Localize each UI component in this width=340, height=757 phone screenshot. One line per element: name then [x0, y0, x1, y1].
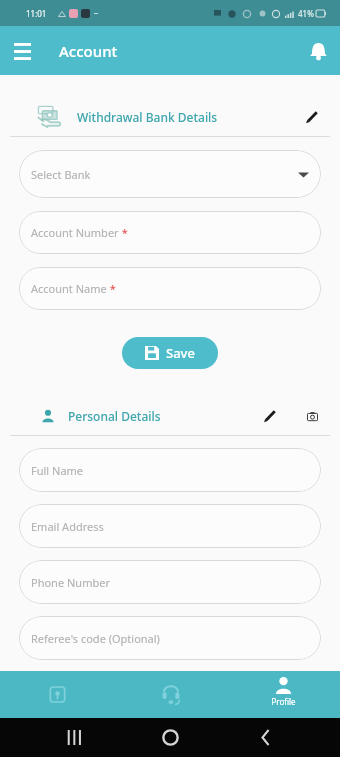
staticText: Select Bank	[31, 167, 91, 182]
button[interactable]: Select Bank	[19, 150, 321, 198]
staticText: Personal Details	[68, 408, 161, 424]
staticText: Account Number	[31, 225, 119, 240]
staticText: Withdrawal Bank Details	[77, 109, 218, 125]
button[interactable]: Account Number	[19, 211, 321, 254]
button[interactable]: Home	[0, 671, 114, 718]
button[interactable]: Open navigation menu	[6, 35, 38, 67]
button[interactable]: Notifications	[303, 36, 333, 66]
staticText: Save	[166, 344, 195, 362]
staticText: Account	[59, 41, 118, 61]
button[interactable]: Support	[114, 671, 227, 718]
button[interactable]: Save	[122, 337, 218, 369]
staticText: *	[119, 225, 128, 240]
button[interactable]: Profile	[227, 671, 340, 718]
staticText: *	[107, 281, 116, 296]
button[interactable]: Phone Number	[19, 560, 321, 604]
staticText: Email Address	[31, 519, 104, 534]
staticText: Account Name	[31, 281, 107, 296]
button[interactable]: Referee's code (Optional)	[19, 616, 321, 660]
button[interactable]: Edit	[300, 105, 324, 129]
staticText: Referee's code (Optional)	[31, 631, 160, 646]
staticText: Full Name	[31, 463, 84, 478]
button[interactable]: Take photo	[300, 404, 324, 428]
button[interactable]: Account Name	[19, 267, 321, 310]
button[interactable]: Email Address	[19, 504, 321, 548]
button[interactable]: Full Name	[19, 448, 321, 492]
staticText: Profile	[271, 696, 296, 707]
staticText: Phone Number	[31, 575, 110, 590]
staticText: 41%	[298, 8, 314, 19]
button[interactable]: Edit	[258, 404, 282, 428]
staticText: 11:01	[26, 8, 47, 19]
